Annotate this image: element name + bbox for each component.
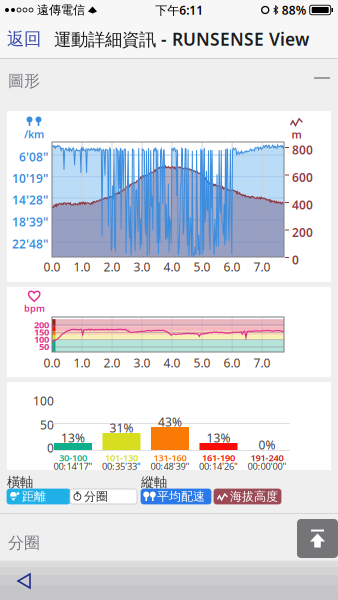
staticText: 00:14'17" xyxy=(53,460,92,472)
staticText: 00:14'26" xyxy=(199,460,238,472)
staticText: 分圈 xyxy=(84,489,108,504)
staticText: 13% xyxy=(61,430,85,446)
button[interactable]: 距離 xyxy=(7,489,70,504)
staticText: 運動詳細資訊 - RUNSENSE View xyxy=(54,27,309,50)
staticText: 30-100 xyxy=(59,451,87,464)
staticText: 0.0 xyxy=(43,355,60,371)
staticText: 600 xyxy=(292,169,313,185)
staticText: 2.0 xyxy=(103,259,120,275)
staticText: 88% xyxy=(282,2,307,18)
button[interactable]: 平均配速 xyxy=(141,489,211,504)
staticText: 191-240 xyxy=(250,451,283,464)
staticText: 橫軸 xyxy=(7,474,33,490)
staticText: 海拔高度 xyxy=(230,489,278,504)
staticText: 1.0 xyxy=(73,355,90,371)
staticText: 5.0 xyxy=(194,355,211,371)
staticText: 100 xyxy=(33,393,54,409)
staticText: 3.0 xyxy=(133,355,150,371)
staticText: 平均配速 xyxy=(157,489,205,504)
staticText: 6.0 xyxy=(224,355,241,371)
staticText: 6.0 xyxy=(224,259,241,275)
staticText: 131-160 xyxy=(153,451,186,464)
button[interactable]: 返回 xyxy=(0,23,48,55)
staticText: 5.0 xyxy=(194,259,211,275)
staticText: 縱軸 xyxy=(141,474,167,490)
staticText: 距離 xyxy=(22,489,46,504)
staticText: 13% xyxy=(206,430,230,446)
staticText: 43% xyxy=(158,414,182,430)
staticText: 7.0 xyxy=(254,355,271,371)
staticText: 4.0 xyxy=(164,355,181,371)
staticText: 分圈 xyxy=(8,533,40,553)
staticText: 7.0 xyxy=(254,259,271,275)
staticText: 50 xyxy=(40,417,54,433)
button[interactable]: 分圈 xyxy=(70,489,137,504)
staticText: 18'39" xyxy=(12,214,48,230)
button[interactable]: Back xyxy=(0,560,52,600)
button[interactable]: Scroll to top xyxy=(297,519,338,558)
staticText: 00:35'33" xyxy=(102,460,141,472)
staticText: 161-190 xyxy=(202,451,235,464)
staticText: 200 xyxy=(34,318,49,331)
staticText: 200 xyxy=(292,224,313,240)
staticText: 4.0 xyxy=(164,259,181,275)
staticText: 下午6:11 xyxy=(155,2,203,18)
staticText: 0% xyxy=(258,437,275,453)
staticText: 100 xyxy=(34,333,49,345)
staticText: 31% xyxy=(109,420,133,436)
staticText: 6'08" xyxy=(19,149,48,165)
staticText: 10'19" xyxy=(12,170,48,186)
staticText: 0 xyxy=(292,252,299,268)
staticText: 圖形 xyxy=(8,71,40,91)
staticText: 800 xyxy=(292,142,313,158)
staticText: 返回 xyxy=(7,28,41,50)
staticText: 1.0 xyxy=(73,259,90,275)
staticText: 3.0 xyxy=(133,259,150,275)
staticText: 22'48" xyxy=(12,236,48,252)
staticText: 0 xyxy=(47,440,54,456)
staticText: 遠傳電信 xyxy=(37,3,85,17)
staticText: /km xyxy=(24,127,44,141)
staticText: 50 xyxy=(39,340,49,353)
staticText: 400 xyxy=(292,197,313,213)
staticText: 00:48'39" xyxy=(150,460,189,472)
staticText: bpm xyxy=(24,302,45,314)
staticText: 14'28" xyxy=(12,192,48,208)
staticText: 00:00'00" xyxy=(247,460,286,472)
button[interactable]: 海拔高度 xyxy=(214,489,281,504)
staticText: 101-130 xyxy=(105,451,138,464)
staticText: 0.0 xyxy=(43,259,60,275)
staticText: m xyxy=(291,127,301,142)
staticText: 150 xyxy=(34,326,49,338)
staticText: 2.0 xyxy=(103,355,120,371)
